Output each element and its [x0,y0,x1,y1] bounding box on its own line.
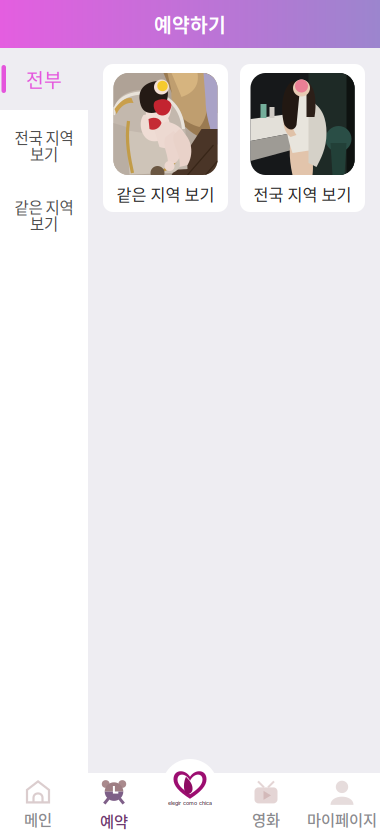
button[interactable]: 예약 [76,773,152,831]
button[interactable]: 전국 지역 [0,110,88,181]
staticText: 전부 [26,65,62,93]
button[interactable]: 같은 지역 보기 [103,64,228,212]
staticText: 전국 지역 [14,126,73,148]
button[interactable]: 같은 지역 [0,181,88,249]
button[interactable]: 마이페이지 [304,773,380,831]
staticText: 영화 [252,808,280,830]
staticText: 예약하기 [154,10,226,38]
staticText: 같은 지역 [14,196,73,218]
staticText: elegir como chica [168,800,212,806]
staticText: 보기 [30,142,58,165]
staticText: 같은 지역 보기 [116,182,214,206]
button[interactable]: 영화 [228,773,304,831]
button[interactable]: 전부 [0,48,88,110]
staticText: 보기 [30,212,58,234]
staticText: 전국 지역 보기 [253,182,351,206]
staticText: 마이페이지 [307,808,377,830]
button[interactable]: 메인 [0,773,76,831]
staticText: 메인 [24,808,52,830]
button[interactable]: 전국 지역 보기 [240,64,365,212]
button[interactable]: Home [162,759,218,815]
staticText: 예약 [100,809,128,831]
